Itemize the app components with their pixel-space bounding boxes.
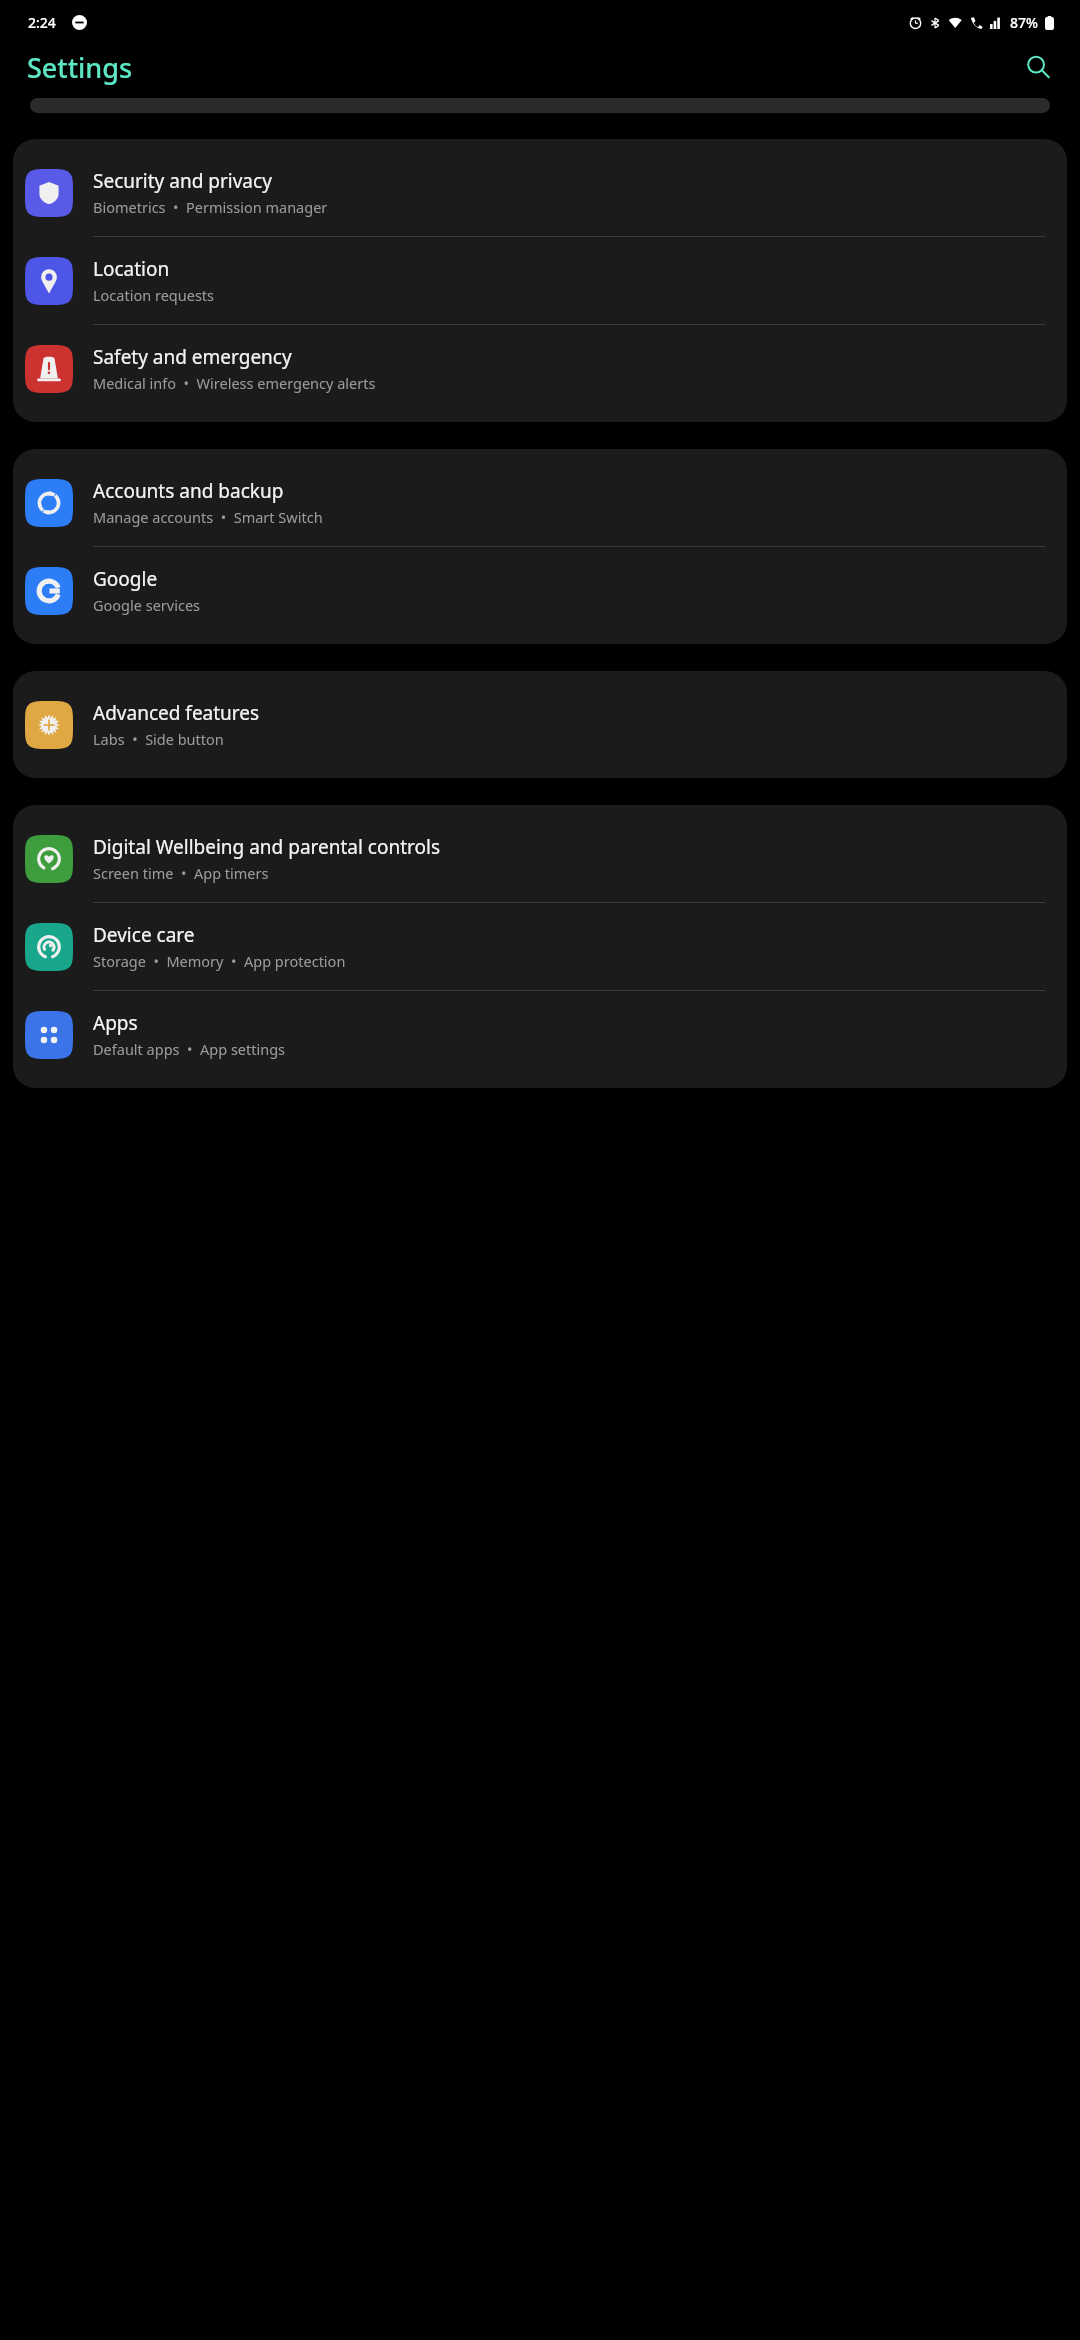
- staticText: Medical info • Wireless emergency alerts: [93, 373, 376, 393]
- staticText: Screen time • App timers: [93, 863, 269, 883]
- staticText: Location: [93, 256, 170, 282]
- staticText: Default apps • App settings: [93, 1039, 286, 1059]
- staticText: Apps: [93, 1010, 138, 1036]
- button[interactable]: Accounts and backup: [13, 459, 1067, 546]
- staticText: Settings: [27, 49, 133, 86]
- staticText: Advanced features: [93, 700, 260, 726]
- staticText: Google services: [93, 595, 201, 615]
- staticText: Safety and emergency: [93, 344, 292, 370]
- button[interactable]: Advanced features: [13, 681, 1067, 768]
- button[interactable]: Search settings: [1016, 45, 1060, 89]
- staticText: Biometrics • Permission manager: [93, 197, 328, 217]
- button[interactable]: Safety and emergency: [13, 325, 1067, 412]
- button[interactable]: Digital Wellbeing and parental controls: [13, 815, 1067, 902]
- staticText: 87%: [1010, 13, 1038, 32]
- staticText: Accounts and backup: [93, 478, 284, 504]
- staticText: Digital Wellbeing and parental controls: [93, 834, 441, 860]
- staticText: Labs • Side button: [93, 729, 224, 749]
- staticText: Location requests: [93, 285, 215, 305]
- button[interactable]: Location: [13, 237, 1067, 324]
- button[interactable]: Apps: [13, 991, 1067, 1078]
- staticText: Security and privacy: [93, 168, 272, 194]
- staticText: Google: [93, 566, 158, 592]
- staticText: Manage accounts • Smart Switch: [93, 507, 323, 527]
- staticText: Storage • Memory • App protection: [93, 951, 346, 971]
- button[interactable]: Device care: [13, 903, 1067, 990]
- staticText: Device care: [93, 922, 195, 948]
- staticText: 2:24: [28, 13, 56, 32]
- button[interactable]: Security and privacy: [13, 149, 1067, 236]
- button[interactable]: Google: [13, 547, 1067, 634]
